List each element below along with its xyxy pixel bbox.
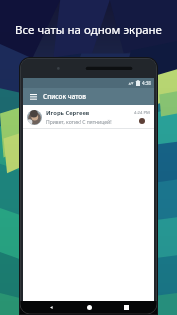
staticText: Игорь Сергеев	[46, 109, 90, 117]
staticText: 4:24 PM	[134, 110, 150, 116]
button[interactable]: Home	[82, 301, 96, 314]
button[interactable]: Back	[44, 301, 58, 314]
staticText: Список чатов	[43, 92, 86, 101]
button[interactable]: Open navigation menu	[28, 92, 38, 102]
staticText: Привет, котик! С пятницей!	[46, 119, 112, 126]
button[interactable]: Recent apps	[119, 301, 133, 314]
staticText: Все чаты на одном экране	[15, 22, 162, 38]
button[interactable]: Игорь Сергеев	[23, 105, 154, 129]
staticText: 4:38	[142, 80, 151, 86]
